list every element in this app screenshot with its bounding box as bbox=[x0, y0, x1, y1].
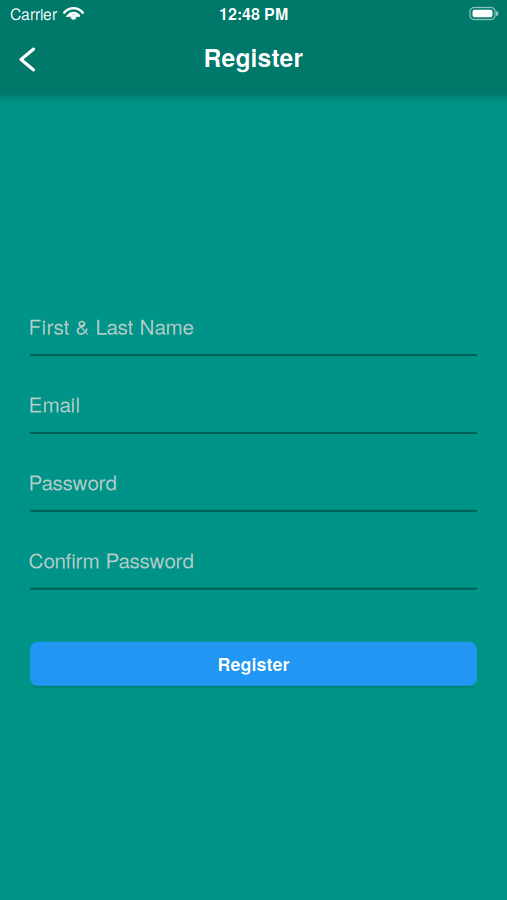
staticText: Email bbox=[28, 389, 80, 418]
staticText: Confirm Password bbox=[28, 545, 193, 574]
staticText: Register bbox=[203, 39, 303, 75]
button[interactable]: Back bbox=[0, 34, 47, 90]
button[interactable]: Register bbox=[0, 642, 507, 689]
button[interactable]: Password bbox=[30, 467, 477, 512]
staticText: Carrier bbox=[10, 2, 57, 25]
staticText: Register bbox=[217, 651, 289, 677]
button[interactable]: Email bbox=[30, 389, 477, 434]
staticText: Password bbox=[28, 467, 116, 496]
staticText: First & Last Name bbox=[28, 311, 193, 341]
button[interactable]: Confirm Password bbox=[30, 545, 477, 590]
staticText: 12:48 PM bbox=[219, 2, 288, 25]
button[interactable]: First & Last Name bbox=[30, 311, 477, 356]
